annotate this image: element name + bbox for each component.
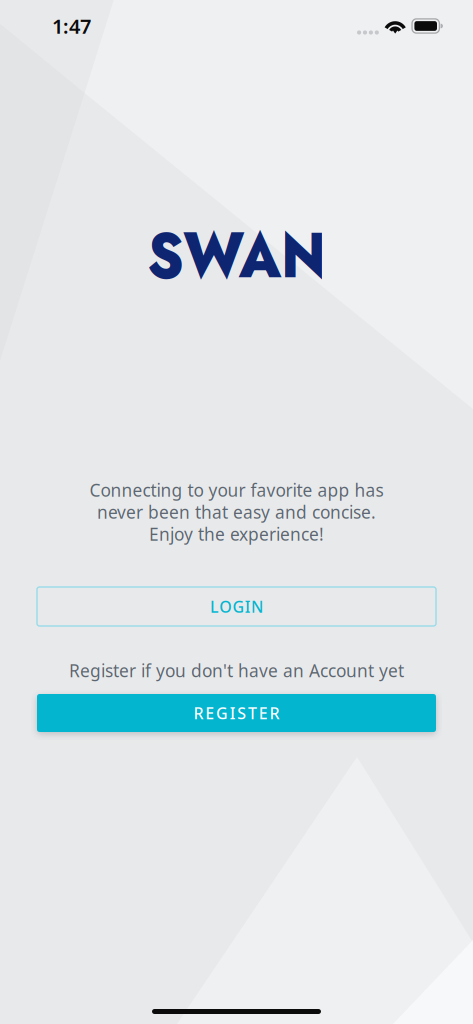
staticText: R xyxy=(269,702,279,724)
staticText: G xyxy=(216,702,228,724)
staticText: I xyxy=(245,596,251,617)
button[interactable]: L xyxy=(37,587,436,626)
staticText: R xyxy=(194,702,204,724)
staticText: S xyxy=(237,702,246,724)
staticText: I xyxy=(230,702,236,724)
staticText: never been that easy and concise. xyxy=(97,500,376,523)
staticText: E xyxy=(259,702,268,724)
staticText: Connecting to your favorite app has xyxy=(89,478,383,501)
staticText: L xyxy=(210,596,219,617)
staticText: 1:47 xyxy=(52,13,91,39)
staticText: Enjoy the experience! xyxy=(149,522,324,545)
staticText: SWAN xyxy=(135,209,338,301)
staticText: G xyxy=(232,596,244,617)
staticText: Register if you don't have an Account ye… xyxy=(69,659,404,682)
staticText: E xyxy=(205,702,214,724)
staticText: O xyxy=(219,596,232,617)
staticText: N xyxy=(251,596,263,617)
button[interactable]: R xyxy=(37,694,436,732)
staticText: T xyxy=(248,702,257,724)
